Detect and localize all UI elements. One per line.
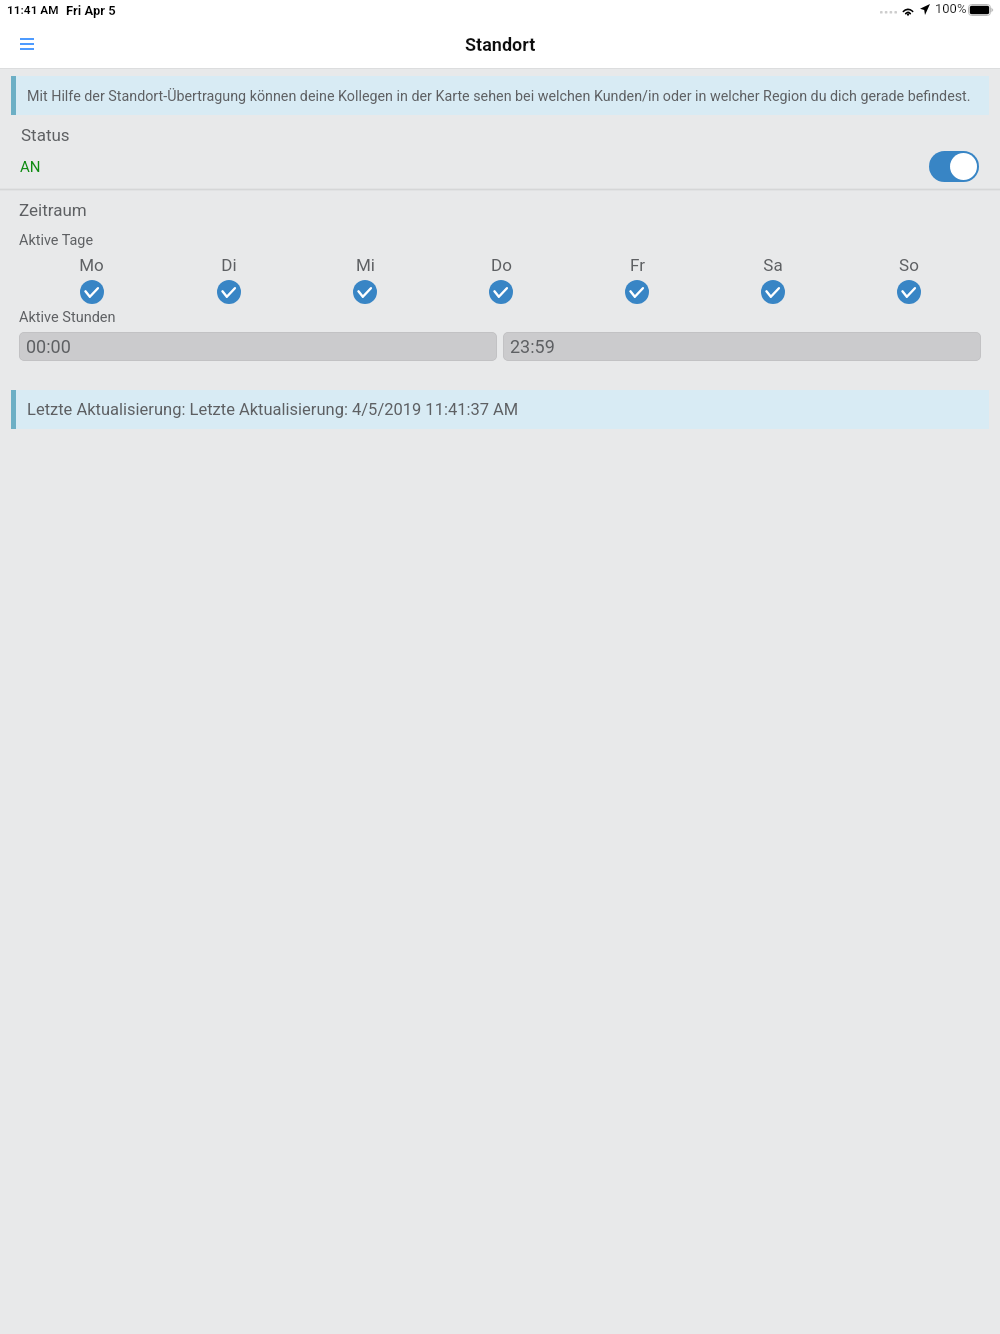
button[interactable]: Di aktiv bbox=[160, 255, 297, 304]
staticText: Zeitraum bbox=[19, 200, 87, 220]
button[interactable]: Standort-Übertragung ein bbox=[929, 151, 979, 182]
staticText: Fr bbox=[630, 255, 645, 275]
button[interactable]: Sa aktiv bbox=[705, 255, 841, 304]
button[interactable]: 23:59 bbox=[503, 332, 981, 361]
staticText: AN bbox=[20, 158, 41, 176]
staticText: Di bbox=[221, 255, 237, 275]
staticText: 11:41 AM bbox=[7, 3, 59, 17]
staticText: Sa bbox=[763, 255, 783, 275]
staticText: Aktive Stunden bbox=[19, 309, 116, 326]
staticText: Fri Apr 5 bbox=[66, 3, 116, 18]
staticText: Mi bbox=[356, 255, 375, 275]
staticText: Letzte Aktualisierung: Letzte Aktualisie… bbox=[27, 400, 519, 419]
button[interactable]: 00:00 bbox=[19, 332, 497, 361]
staticText: Do bbox=[491, 255, 512, 275]
staticText: Standort bbox=[465, 34, 536, 55]
staticText: Mo bbox=[79, 255, 104, 275]
staticText: So bbox=[899, 255, 919, 275]
staticText: 100% bbox=[935, 1, 967, 16]
button[interactable]: Menü bbox=[10, 27, 44, 61]
staticText: Status bbox=[21, 125, 70, 145]
staticText: Aktive Tage bbox=[19, 232, 94, 249]
button[interactable]: Fr aktiv bbox=[569, 255, 705, 304]
staticText: 23:59 bbox=[510, 336, 555, 357]
button[interactable]: Mo aktiv bbox=[23, 255, 160, 304]
button[interactable]: Mi aktiv bbox=[297, 255, 433, 304]
staticText: 00:00 bbox=[26, 336, 71, 357]
button[interactable]: Do aktiv bbox=[433, 255, 569, 304]
button[interactable]: So aktiv bbox=[841, 255, 977, 304]
staticText: Mit Hilfe der Standort-Übertragung könne… bbox=[27, 88, 971, 105]
